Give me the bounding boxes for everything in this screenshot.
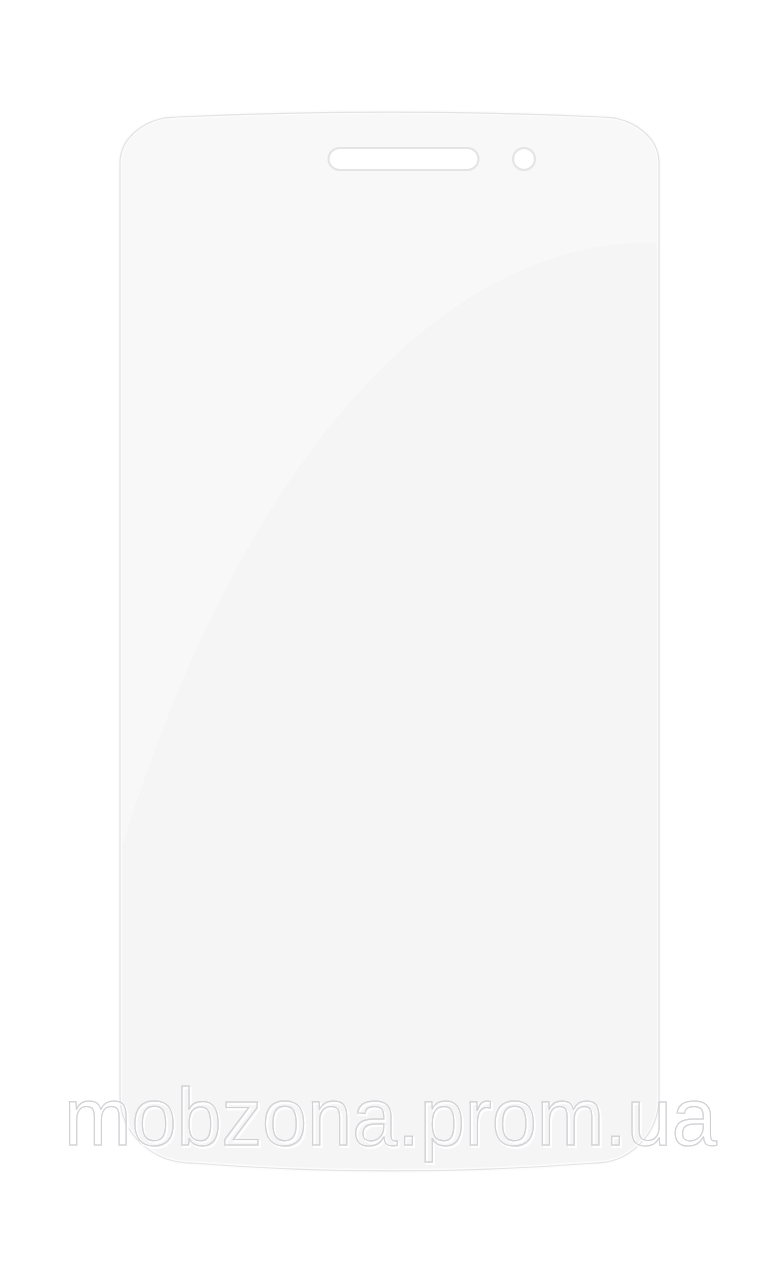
button[interactable]: Tempered glass screen protector product …: [0, 0, 779, 1280]
